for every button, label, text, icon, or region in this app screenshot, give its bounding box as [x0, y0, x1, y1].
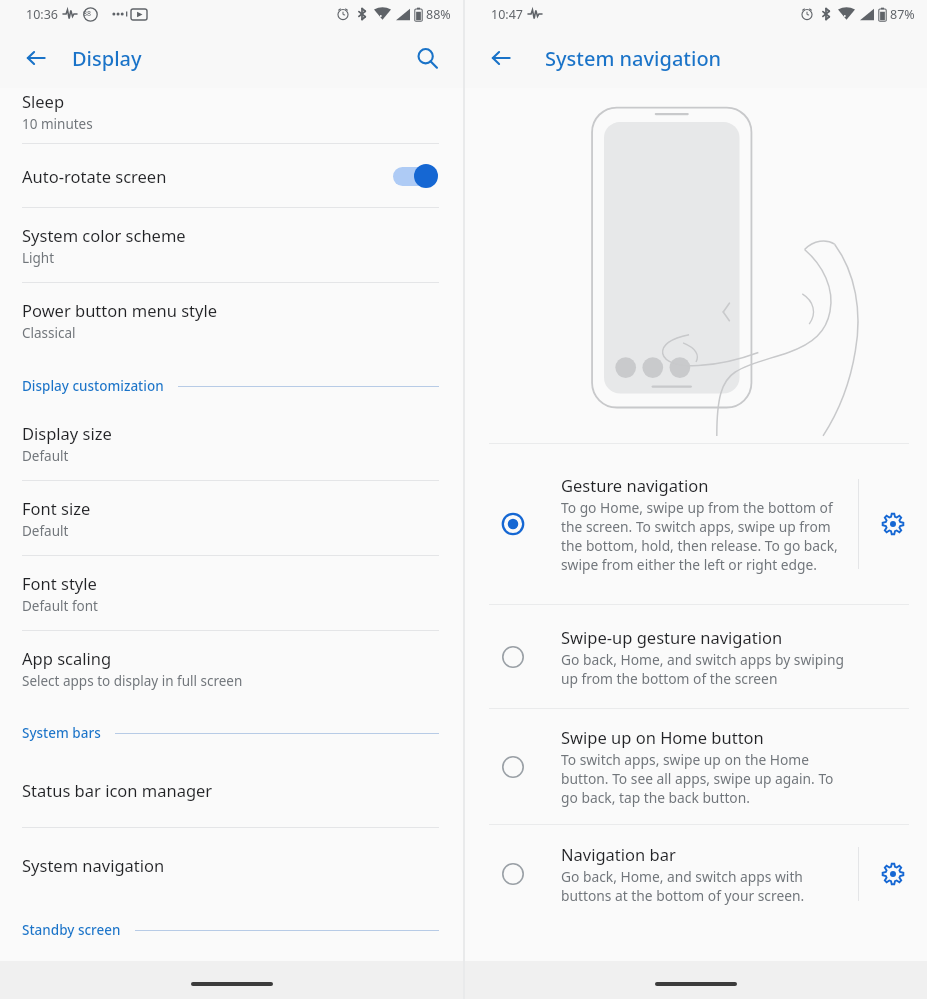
staticText: Go back, Home, and switch apps with butt… [561, 867, 852, 905]
staticText: 10 minutes [22, 115, 93, 133]
staticText: Go back, Home, and switch apps by swipin… [561, 650, 852, 688]
button[interactable]: System color scheme [0, 208, 463, 282]
staticText: Display [72, 45, 142, 72]
staticText: Default font [22, 597, 98, 615]
staticText: System color scheme [22, 224, 186, 246]
button[interactable]: Status bar icon manager [0, 753, 463, 827]
button[interactable]: Back [14, 36, 58, 80]
staticText: Default [22, 522, 69, 540]
button[interactable]: System navigation [0, 828, 463, 902]
staticText: Light [22, 249, 55, 267]
staticText: Swipe up on Home button [561, 726, 764, 748]
button[interactable]: Auto-rotate screen [0, 144, 463, 207]
button[interactable]: Display size [0, 406, 463, 480]
button[interactable]: Swipe up on Home button [465, 709, 927, 824]
staticText: 88% [426, 6, 451, 23]
button[interactable]: Font style [0, 556, 463, 630]
staticText: Power button menu style [22, 299, 217, 321]
staticText: System bars [22, 724, 101, 742]
staticText: System navigation [22, 854, 165, 876]
button[interactable]: Gesture navigation settings [859, 444, 927, 604]
staticText: Swipe-up gesture navigation [561, 626, 783, 648]
button[interactable]: Navigation bar settings [859, 825, 927, 923]
staticText: 10:47 [491, 6, 523, 23]
button[interactable]: Power button menu style [0, 283, 463, 357]
staticText: Font size [22, 497, 91, 519]
staticText: Standby screen [22, 921, 121, 939]
staticText: Font style [22, 572, 97, 594]
staticText: 88 [83, 9, 92, 19]
staticText: To switch apps, swipe up on the Home but… [561, 750, 852, 807]
staticText: App scaling [22, 647, 112, 669]
staticText: Classical [22, 324, 76, 342]
button[interactable]: Font size [0, 481, 463, 555]
staticText: Display customization [22, 377, 164, 395]
staticText: Select apps to display in full screen [22, 672, 243, 690]
staticText: Navigation bar [561, 843, 676, 865]
button[interactable]: Back [479, 36, 523, 80]
staticText: Auto-rotate screen [22, 165, 167, 187]
button[interactable]: Navigation bar [465, 825, 927, 923]
staticText: Status bar icon manager [22, 779, 213, 801]
button[interactable]: Swipe-up gesture navigation [465, 605, 927, 708]
staticText: Sleep [22, 90, 65, 112]
button[interactable]: Sleep [0, 88, 463, 143]
staticText: 10:36 [26, 6, 58, 23]
button[interactable]: Gesture navigation [465, 444, 927, 604]
staticText: 87% [890, 6, 915, 23]
button[interactable]: Auto-rotate screen toggle [389, 161, 441, 191]
staticText: Default [22, 447, 69, 465]
staticText: Display size [22, 422, 112, 444]
staticText: System navigation [545, 45, 722, 72]
staticText: To go Home, swipe up from the bottom of … [561, 498, 852, 574]
button[interactable]: App scaling [0, 631, 463, 705]
button[interactable]: Search [405, 36, 449, 80]
staticText: Gesture navigation [561, 474, 709, 496]
